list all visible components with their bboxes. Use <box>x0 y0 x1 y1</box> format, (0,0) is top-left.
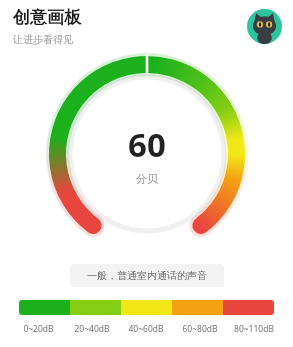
staticText: 80~110dB <box>234 323 274 335</box>
staticText: 分贝 <box>136 172 158 186</box>
staticText: 40~60dB <box>128 323 164 335</box>
button[interactable]: Profile avatar <box>247 9 282 44</box>
staticText: 20~40dB <box>74 323 110 335</box>
staticText: 0~20dB <box>23 323 54 335</box>
staticText: 一般，普通室内通话的声音 <box>87 269 207 282</box>
staticText: 60~80dB <box>182 323 218 335</box>
staticText: 60 <box>128 122 166 167</box>
staticText: 创意画板 <box>13 7 81 28</box>
button[interactable]: 一般，普通室内通话的声音 <box>70 264 224 287</box>
staticText: 让进步看得见 <box>13 33 73 46</box>
